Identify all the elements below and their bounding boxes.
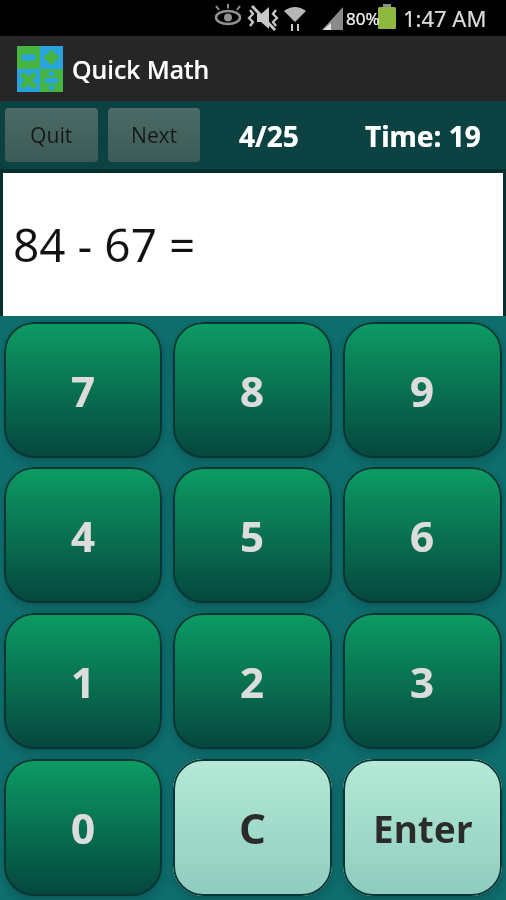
staticText: 80%: [346, 7, 380, 30]
staticText: Quick Math: [72, 52, 210, 86]
staticText: 1:47 AM: [403, 3, 487, 33]
staticText: Quit: [30, 121, 73, 150]
staticText: 8: [240, 362, 265, 419]
staticText: Time: 19: [365, 117, 481, 155]
staticText: 7: [71, 362, 96, 419]
staticText: Next: [131, 121, 178, 150]
button[interactable]: Next: [108, 108, 200, 162]
button[interactable]: C: [173, 759, 332, 896]
staticText: 84 - 67 =: [13, 213, 196, 276]
button[interactable]: 2: [173, 613, 332, 749]
button[interactable]: 3: [343, 613, 502, 749]
staticText: 2: [240, 653, 265, 710]
staticText: 4: [71, 507, 96, 564]
button[interactable]: Quit: [5, 108, 98, 162]
button[interactable]: 4: [4, 467, 162, 603]
staticText: C: [239, 799, 266, 856]
button[interactable]: 6: [343, 467, 502, 603]
staticText: 6: [410, 507, 435, 564]
staticText: 9: [410, 362, 435, 419]
button[interactable]: 5: [173, 467, 332, 603]
button[interactable]: 7: [4, 322, 162, 458]
staticText: 1: [71, 653, 96, 710]
button[interactable]: 9: [343, 322, 502, 458]
button[interactable]: 8: [173, 322, 332, 458]
button[interactable]: 1: [4, 613, 162, 749]
button[interactable]: Enter: [343, 759, 502, 896]
staticText: 3: [410, 653, 435, 710]
staticText: 0: [71, 799, 96, 856]
button[interactable]: 0: [4, 759, 162, 896]
staticText: Enter: [373, 803, 473, 853]
staticText: 4/25: [239, 117, 299, 155]
staticText: 5: [240, 507, 265, 564]
